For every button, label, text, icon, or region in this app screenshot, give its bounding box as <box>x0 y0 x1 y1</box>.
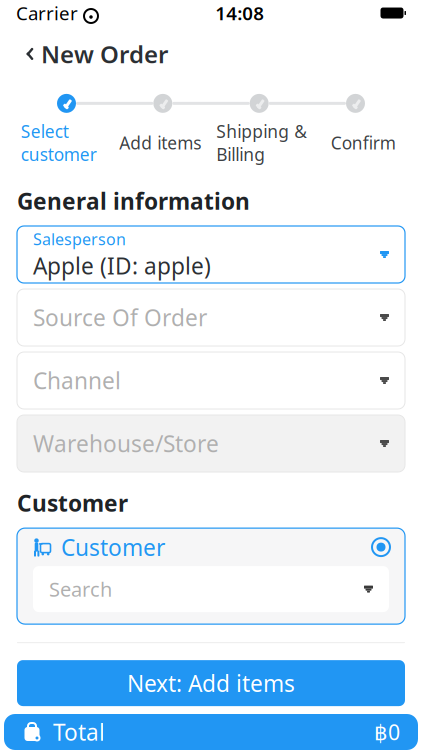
staticText: Shipping & Billing <box>216 120 307 166</box>
staticText: General information <box>17 186 250 216</box>
staticText: Confirm <box>331 131 396 154</box>
staticText: Add items <box>119 131 201 154</box>
staticText: Search <box>49 576 112 602</box>
staticText: Customer <box>61 532 165 562</box>
staticText: 14:08 <box>215 1 264 25</box>
staticText: Warehouse/Store <box>33 428 219 459</box>
staticText: Next: Add items <box>127 668 295 698</box>
staticText: Apple (ID: apple) <box>33 251 211 281</box>
button[interactable]: Warehouse/Store <box>17 415 405 472</box>
staticText: New Order <box>41 38 168 70</box>
button[interactable]: Salesperson <box>17 226 405 283</box>
staticText: Carrier <box>16 1 78 25</box>
button[interactable]: Customer <box>17 528 405 624</box>
staticText: Select customer <box>21 120 97 166</box>
staticText: Customer <box>17 488 128 518</box>
button[interactable]: New Order <box>18 32 172 76</box>
staticText: Total <box>53 717 105 747</box>
button[interactable]: Next: Add items <box>17 660 405 706</box>
staticText: ฿0 <box>374 718 400 746</box>
button[interactable]: Channel <box>17 352 405 409</box>
staticText: Source Of Order <box>33 302 207 333</box>
button[interactable]: Source Of Order <box>17 289 405 346</box>
staticText: Salesperson <box>33 228 126 249</box>
staticText: Channel <box>33 365 121 396</box>
button[interactable]: Total <box>4 714 418 750</box>
